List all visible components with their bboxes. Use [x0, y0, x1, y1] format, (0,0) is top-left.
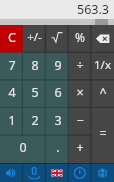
staticText: 563.3 [77, 1, 109, 18]
staticText: ÷ [76, 57, 84, 74]
button[interactable]: 0 [0, 135, 46, 163]
staticText: 9 [54, 57, 62, 74]
button[interactable]: Backspace [91, 25, 114, 53]
button[interactable]: Language [45, 163, 68, 182]
button[interactable]: . [46, 135, 69, 163]
button[interactable]: +/- [23, 25, 46, 53]
button[interactable]: 2 [23, 108, 46, 136]
button[interactable]: Volume [0, 163, 22, 182]
staticText: C [8, 29, 16, 46]
button[interactable]: × [68, 80, 91, 108]
button[interactable]: 5 [23, 80, 46, 108]
staticText: 6 [54, 84, 62, 101]
staticText: +/- [27, 29, 42, 45]
staticText: 3 [54, 112, 62, 129]
button[interactable]: 3 [46, 108, 69, 136]
staticText: 0 [19, 139, 27, 156]
button[interactable]: % [68, 25, 91, 53]
button[interactable]: − [68, 108, 91, 136]
staticText: × [76, 84, 84, 101]
button[interactable]: 7 [0, 53, 23, 81]
staticText: 7 [8, 57, 16, 74]
button[interactable]: Web [91, 163, 114, 182]
button[interactable]: Square root [46, 25, 69, 53]
button[interactable]: Rotate screen [22, 163, 45, 182]
button[interactable]: 1 [0, 108, 23, 136]
staticText: . [56, 139, 60, 156]
button[interactable]: C [0, 25, 23, 53]
staticText: ^ [99, 84, 107, 101]
button[interactable]: ÷ [68, 53, 91, 81]
staticText: 1/x [94, 57, 111, 73]
staticText: + [76, 139, 84, 156]
staticText: 1 [8, 112, 16, 129]
button[interactable]: 6 [46, 80, 69, 108]
staticText: 5 [31, 84, 39, 101]
button[interactable]: = [91, 108, 114, 163]
staticText: 2 [31, 112, 39, 129]
button[interactable]: 9 [46, 53, 69, 81]
staticText: 8 [31, 57, 39, 74]
button[interactable]: 1/x [91, 53, 114, 81]
staticText: 4 [8, 84, 16, 101]
button[interactable]: ^ [91, 80, 114, 108]
button[interactable]: 4 [0, 80, 23, 108]
button[interactable]: + [68, 135, 91, 163]
button[interactable]: 8 [23, 53, 46, 81]
staticText: − [76, 112, 84, 129]
staticText: % [75, 29, 85, 45]
button[interactable]: Power [68, 163, 91, 182]
staticText: = [99, 125, 107, 142]
